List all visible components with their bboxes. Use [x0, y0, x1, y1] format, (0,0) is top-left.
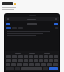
button[interactable] [44, 53, 50, 54]
button[interactable]: Enter [49, 67, 58, 70]
button[interactable]: List [6, 27, 11, 29]
button[interactable] [7, 31, 57, 36]
button[interactable] [2, 2, 13, 5]
button[interactable]: App icon [14, 3, 16, 5]
button[interactable]: Bold [6, 23, 10, 25]
button[interactable]: Italic [54, 23, 58, 25]
button[interactable] [15, 53, 21, 54]
button[interactable] [29, 53, 35, 54]
